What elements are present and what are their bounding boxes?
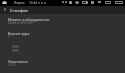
staticText: Накопитель — [8, 59, 29, 64]
staticText: IMEI — [13, 49, 18, 52]
staticText: 32 ГБ — [8, 63, 16, 67]
staticText: IMEI — [13, 45, 18, 48]
staticText: 9 — [8, 35, 10, 39]
staticText: О телефоне — [10, 9, 29, 13]
staticText: Яндекс — [14, 1, 25, 5]
button[interactable]: IMEI — [12, 45, 19, 48]
button[interactable]: Back — [1, 6, 8, 13]
staticText: Модель и оборудование — [8, 17, 50, 22]
button[interactable]: IMEI — [12, 49, 19, 52]
staticText: 14:44 — [29, 1, 38, 5]
staticText: Версия ядра — [8, 31, 30, 36]
staticText: Модель MRX-W0 — [8, 21, 33, 25]
